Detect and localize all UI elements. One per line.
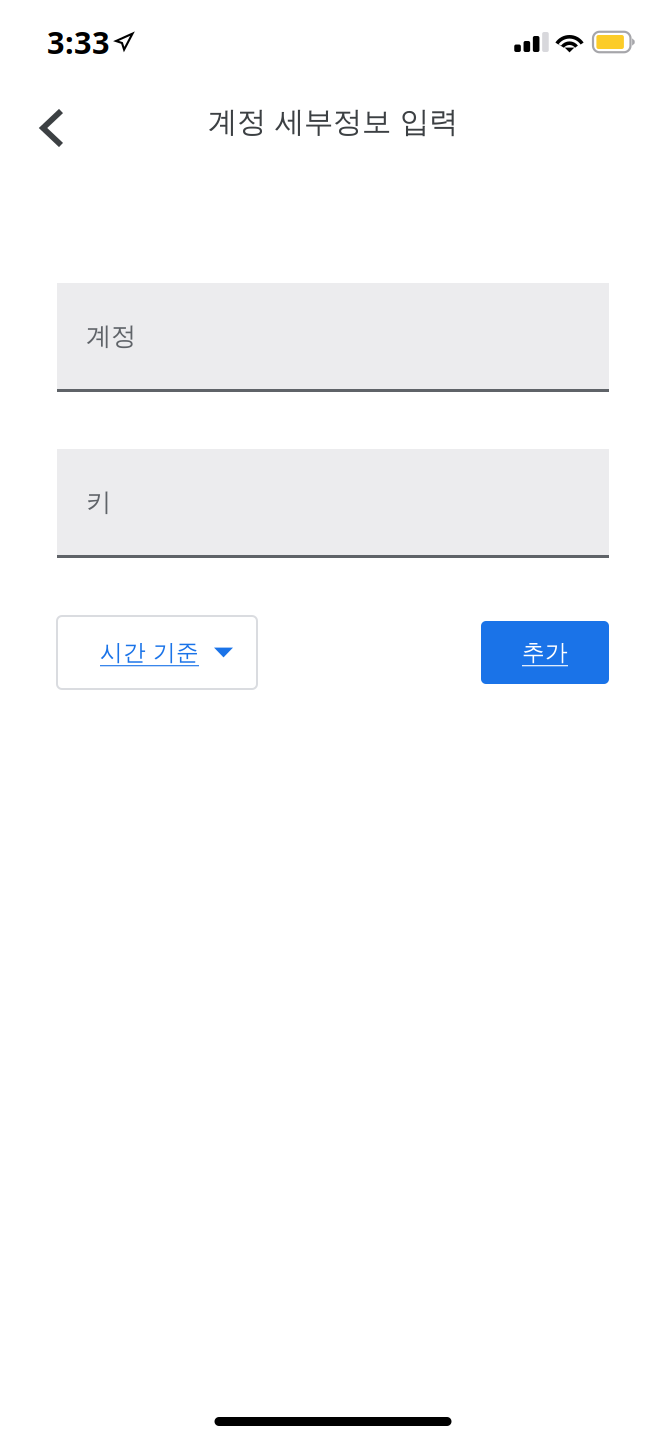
staticText: 키 bbox=[86, 486, 111, 517]
button[interactable]: 키 bbox=[57, 449, 609, 558]
staticText: 계정 bbox=[86, 320, 136, 351]
button[interactable]: 시간 기준 bbox=[57, 616, 257, 689]
staticText: 3:33 bbox=[47, 22, 110, 62]
staticText: 계정 세부정보 입력 bbox=[208, 104, 458, 140]
staticText: 시간 기준 bbox=[100, 639, 199, 666]
button[interactable]: 추가 bbox=[481, 621, 609, 684]
button[interactable]: 계정 bbox=[57, 283, 609, 392]
staticText: 추가 bbox=[522, 639, 568, 666]
button[interactable]: Back bbox=[22, 88, 80, 148]
